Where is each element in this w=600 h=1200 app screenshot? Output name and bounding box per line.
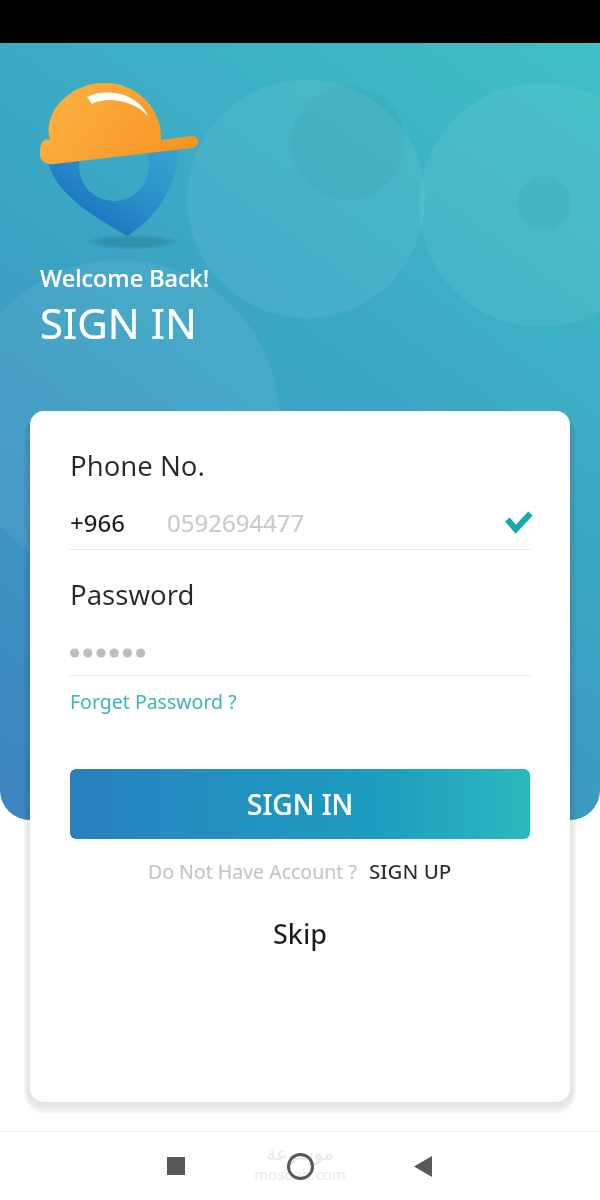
staticText: Forget Password ?	[70, 688, 237, 715]
staticText: Password	[70, 576, 195, 613]
staticText: SIGN IN	[247, 785, 354, 823]
staticText: mosoah.com	[254, 1164, 346, 1184]
staticText: Skip	[273, 915, 327, 952]
staticText: Phone No.	[70, 447, 205, 484]
staticText: Welcome Back!	[40, 262, 210, 294]
button[interactable]: SIGN IN	[70, 769, 530, 839]
button[interactable]: Skip	[273, 915, 327, 952]
staticText: Do Not Have Account ?	[148, 858, 357, 885]
button[interactable]: Forget Password ?	[70, 688, 237, 715]
staticText: SIGN UP	[369, 857, 452, 885]
staticText: SIGN IN	[40, 294, 197, 351]
staticText: موسوعة	[266, 1142, 334, 1164]
button[interactable]: Home	[287, 1153, 314, 1180]
button[interactable]: Back	[414, 1156, 432, 1177]
button[interactable]: SIGN UP	[369, 857, 452, 885]
staticText: 0592694477	[167, 506, 305, 539]
staticText: +966	[70, 506, 125, 539]
